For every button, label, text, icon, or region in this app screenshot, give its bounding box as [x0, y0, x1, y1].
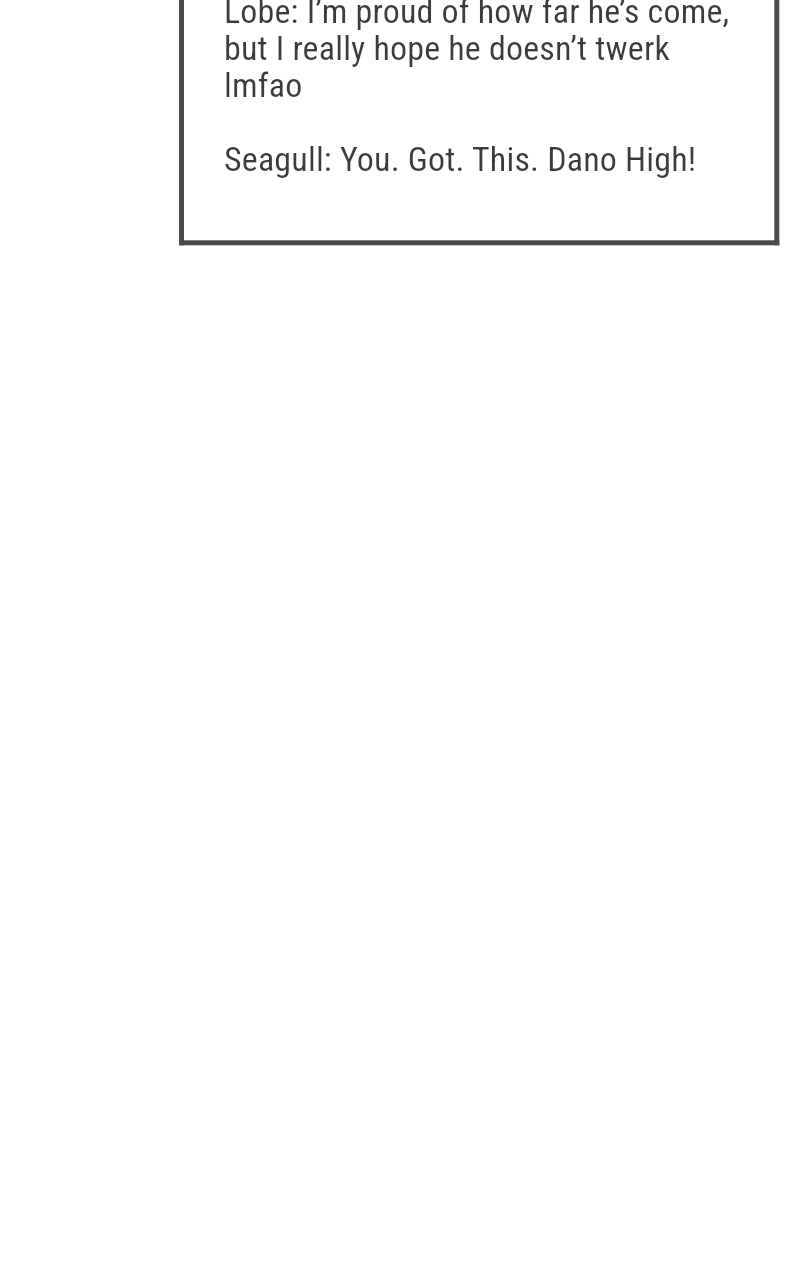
- staticText: Lobe: I’m proud of how far he’s come, bu…: [224, 0, 730, 179]
- button[interactable]: Comic page: [0, 0, 800, 1280]
